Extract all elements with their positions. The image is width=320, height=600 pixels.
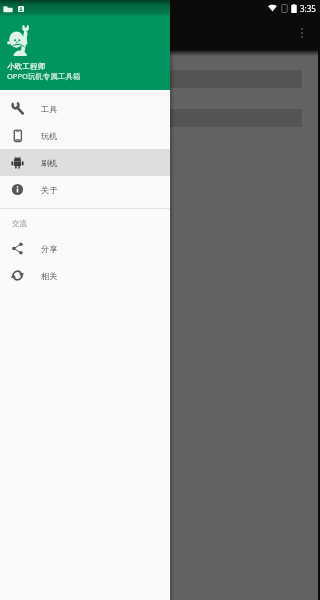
- button[interactable]: 分享: [0, 235, 170, 262]
- button[interactable]: 关于: [0, 176, 170, 203]
- staticText: 交流: [12, 219, 27, 228]
- staticText: 相关: [41, 271, 58, 281]
- button[interactable]: 工具: [0, 95, 170, 122]
- staticText: 关于: [41, 185, 58, 195]
- staticText: 工具: [41, 104, 58, 114]
- button[interactable]: 相关: [0, 262, 170, 289]
- staticText: 小欧工程师: [7, 62, 45, 72]
- staticText: 刷机: [41, 158, 58, 168]
- staticText: 分享: [41, 244, 58, 254]
- button[interactable]: 刷机: [0, 149, 170, 176]
- staticText: OPPO玩机专属工具箱: [7, 71, 81, 81]
- staticText: 3:35: [300, 3, 316, 14]
- button[interactable]: 玩机: [0, 122, 170, 149]
- staticText: 玩机: [41, 131, 58, 141]
- button[interactable]: More options: [289, 20, 315, 46]
